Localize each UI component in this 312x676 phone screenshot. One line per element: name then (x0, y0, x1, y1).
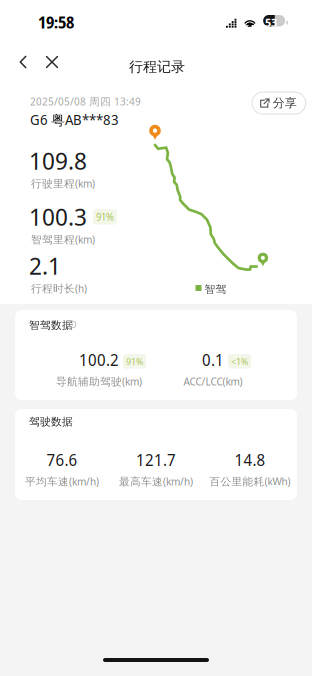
staticText: 分享 (273, 95, 297, 111)
staticText: 121.7 (136, 449, 176, 471)
staticText: 91% (96, 210, 114, 224)
staticText: <1% (231, 355, 248, 368)
staticText: 14.8 (234, 449, 265, 471)
staticText: 53 (265, 15, 277, 30)
button[interactable]: 返回 (10, 48, 36, 76)
staticText: 0.1 (202, 349, 224, 371)
staticText: 驾驶数据 (29, 415, 73, 428)
staticText: 100.3 (29, 200, 87, 233)
staticText: 2.1 (29, 249, 61, 282)
staticText: 行程时长(h) (31, 281, 87, 295)
staticText: 智驾里程(km) (31, 232, 95, 246)
staticText: 行程记录 (129, 58, 185, 76)
staticText: 76.6 (46, 449, 77, 471)
staticText: 2025/05/08 周四 13:49 (30, 94, 141, 108)
staticText: 19:58 (38, 12, 74, 33)
staticText: 百公里能耗(kWh) (209, 474, 290, 488)
button[interactable]: 关闭 (39, 48, 65, 76)
staticText: G6 粤AB***83 (30, 110, 119, 129)
staticText: 100.2 (79, 349, 119, 371)
button[interactable]: 分享 (252, 92, 306, 114)
staticText: 平均车速(km/h) (25, 474, 99, 488)
staticText: 最高车速(km/h) (119, 474, 193, 488)
staticText: 导航辅助驾驶(km) (56, 374, 142, 388)
staticText: 109.8 (29, 144, 87, 177)
staticText: ACC/LCC(km) (183, 374, 242, 388)
staticText: 行驶里程(km) (31, 176, 95, 190)
staticText: 91% (126, 355, 143, 368)
staticText: 智驾 (204, 282, 226, 296)
staticText: 智驾数据 (29, 318, 73, 332)
